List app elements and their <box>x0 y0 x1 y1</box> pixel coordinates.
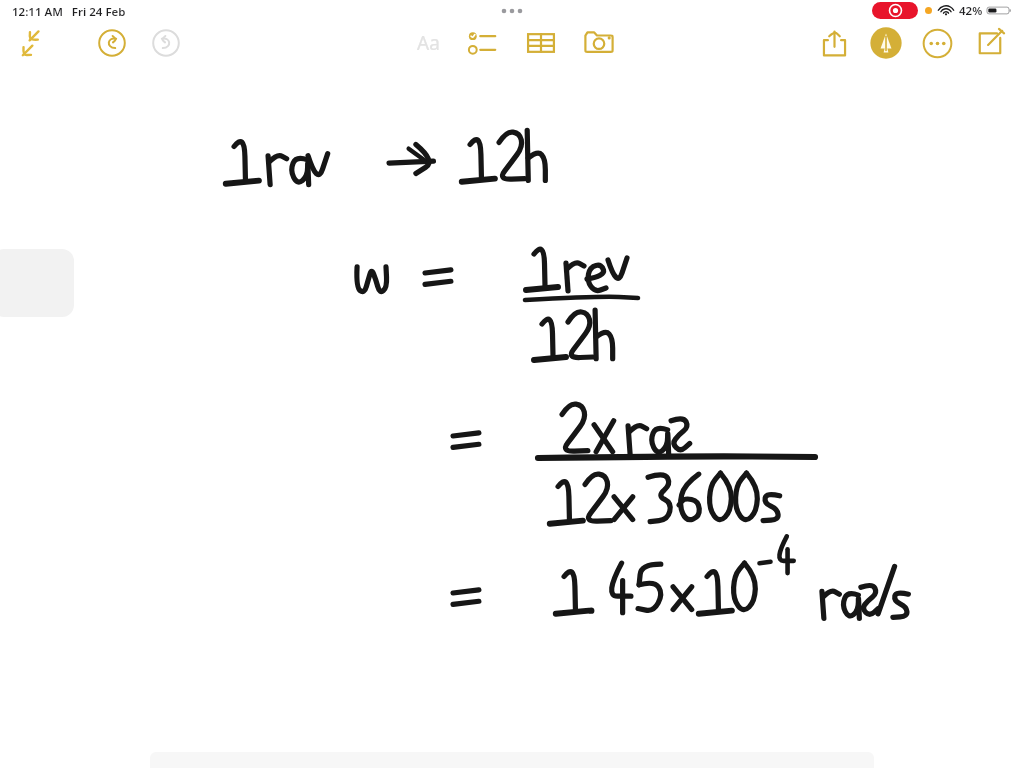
button[interactable]: Collapse <box>14 26 48 60</box>
button[interactable]: Camera <box>582 26 616 60</box>
button[interactable]: Pen tool <box>869 26 903 60</box>
button[interactable]: Redo <box>150 27 182 59</box>
button[interactable]: Checklist <box>466 26 500 60</box>
button[interactable]: Insert table <box>524 26 558 60</box>
staticText: Aa <box>417 30 440 56</box>
button[interactable]: Share <box>818 27 851 60</box>
button[interactable]: Screen recording <box>872 2 918 19</box>
button[interactable]: Compose <box>974 27 1006 59</box>
staticText: 12:11 AM Fri 24 Feb <box>12 4 126 20</box>
staticText: 42% <box>959 3 983 19</box>
button[interactable]: More options <box>921 27 954 60</box>
button[interactable]: Aa <box>408 26 448 60</box>
button[interactable]: Undo <box>96 27 128 59</box>
